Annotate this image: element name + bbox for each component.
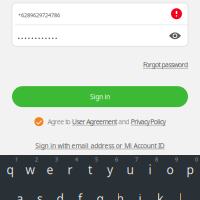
staticText: q <box>6 161 13 177</box>
staticText: 8 <box>155 156 158 163</box>
staticText: 4 <box>75 156 78 163</box>
button[interactable]: 4 <box>60 155 80 184</box>
button[interactable] <box>150 184 170 200</box>
button[interactable] <box>10 184 30 200</box>
staticText: 7 <box>135 156 138 163</box>
staticText: a <box>16 190 23 200</box>
button[interactable] <box>90 184 110 200</box>
staticText: 2 <box>35 156 38 163</box>
button[interactable]: Sign in with email address or Mi Account… <box>35 141 165 150</box>
button[interactable]: Show password <box>169 32 181 40</box>
staticText: y <box>107 161 113 177</box>
staticText: 0 <box>195 156 198 163</box>
staticText: i <box>148 161 151 177</box>
staticText: h <box>116 190 123 200</box>
button[interactable] <box>50 184 70 200</box>
staticText: Forgot password <box>143 60 188 69</box>
staticText: w <box>25 161 34 177</box>
staticText: 5 <box>95 156 98 163</box>
button[interactable]: 8 <box>140 155 160 184</box>
button[interactable]: 7 <box>120 155 140 184</box>
staticText: User Agreement <box>72 117 117 126</box>
staticText: j <box>138 190 141 200</box>
button[interactable]: Sign in <box>12 86 188 107</box>
button[interactable]: 0 <box>180 155 200 184</box>
staticText: 1 <box>15 156 18 163</box>
staticText: 6 <box>115 156 118 163</box>
button[interactable] <box>130 184 150 200</box>
button[interactable]: Agree <box>34 117 43 126</box>
button[interactable]: 1 <box>0 155 20 184</box>
staticText: t <box>88 161 92 177</box>
button[interactable]: Privacy Policy <box>131 117 166 126</box>
button[interactable]: 6 <box>100 155 120 184</box>
staticText: +6289629724786 <box>18 12 60 19</box>
staticText: and <box>117 117 131 126</box>
staticText: f <box>78 190 82 200</box>
staticText: Agree to <box>47 117 72 126</box>
button[interactable] <box>30 184 50 200</box>
button[interactable] <box>110 184 130 200</box>
staticText: Sign in with email address or Mi Account… <box>35 141 165 150</box>
staticText: s <box>37 190 43 200</box>
button[interactable]: Forgot password <box>143 60 188 69</box>
staticText: e <box>46 161 53 177</box>
button[interactable] <box>170 184 190 200</box>
staticText: l <box>178 190 181 200</box>
staticText: 3 <box>55 156 58 163</box>
button[interactable]: Error <box>171 8 182 19</box>
staticText: 9 <box>175 156 178 163</box>
button[interactable]: 5 <box>80 155 100 184</box>
staticText: o <box>166 161 173 177</box>
staticText: u <box>126 161 133 177</box>
staticText: Sign in <box>90 92 110 101</box>
button[interactable]: 3 <box>40 155 60 184</box>
staticText: p <box>186 161 193 177</box>
button[interactable]: 9 <box>160 155 180 184</box>
button[interactable]: User Agreement <box>72 117 117 126</box>
staticText: g <box>96 190 103 200</box>
staticText: d <box>56 190 63 200</box>
staticText: Privacy Policy <box>131 117 166 126</box>
button[interactable]: 2 <box>20 155 40 184</box>
staticText: r <box>67 161 72 177</box>
staticText: k <box>157 190 163 200</box>
button[interactable] <box>70 184 90 200</box>
